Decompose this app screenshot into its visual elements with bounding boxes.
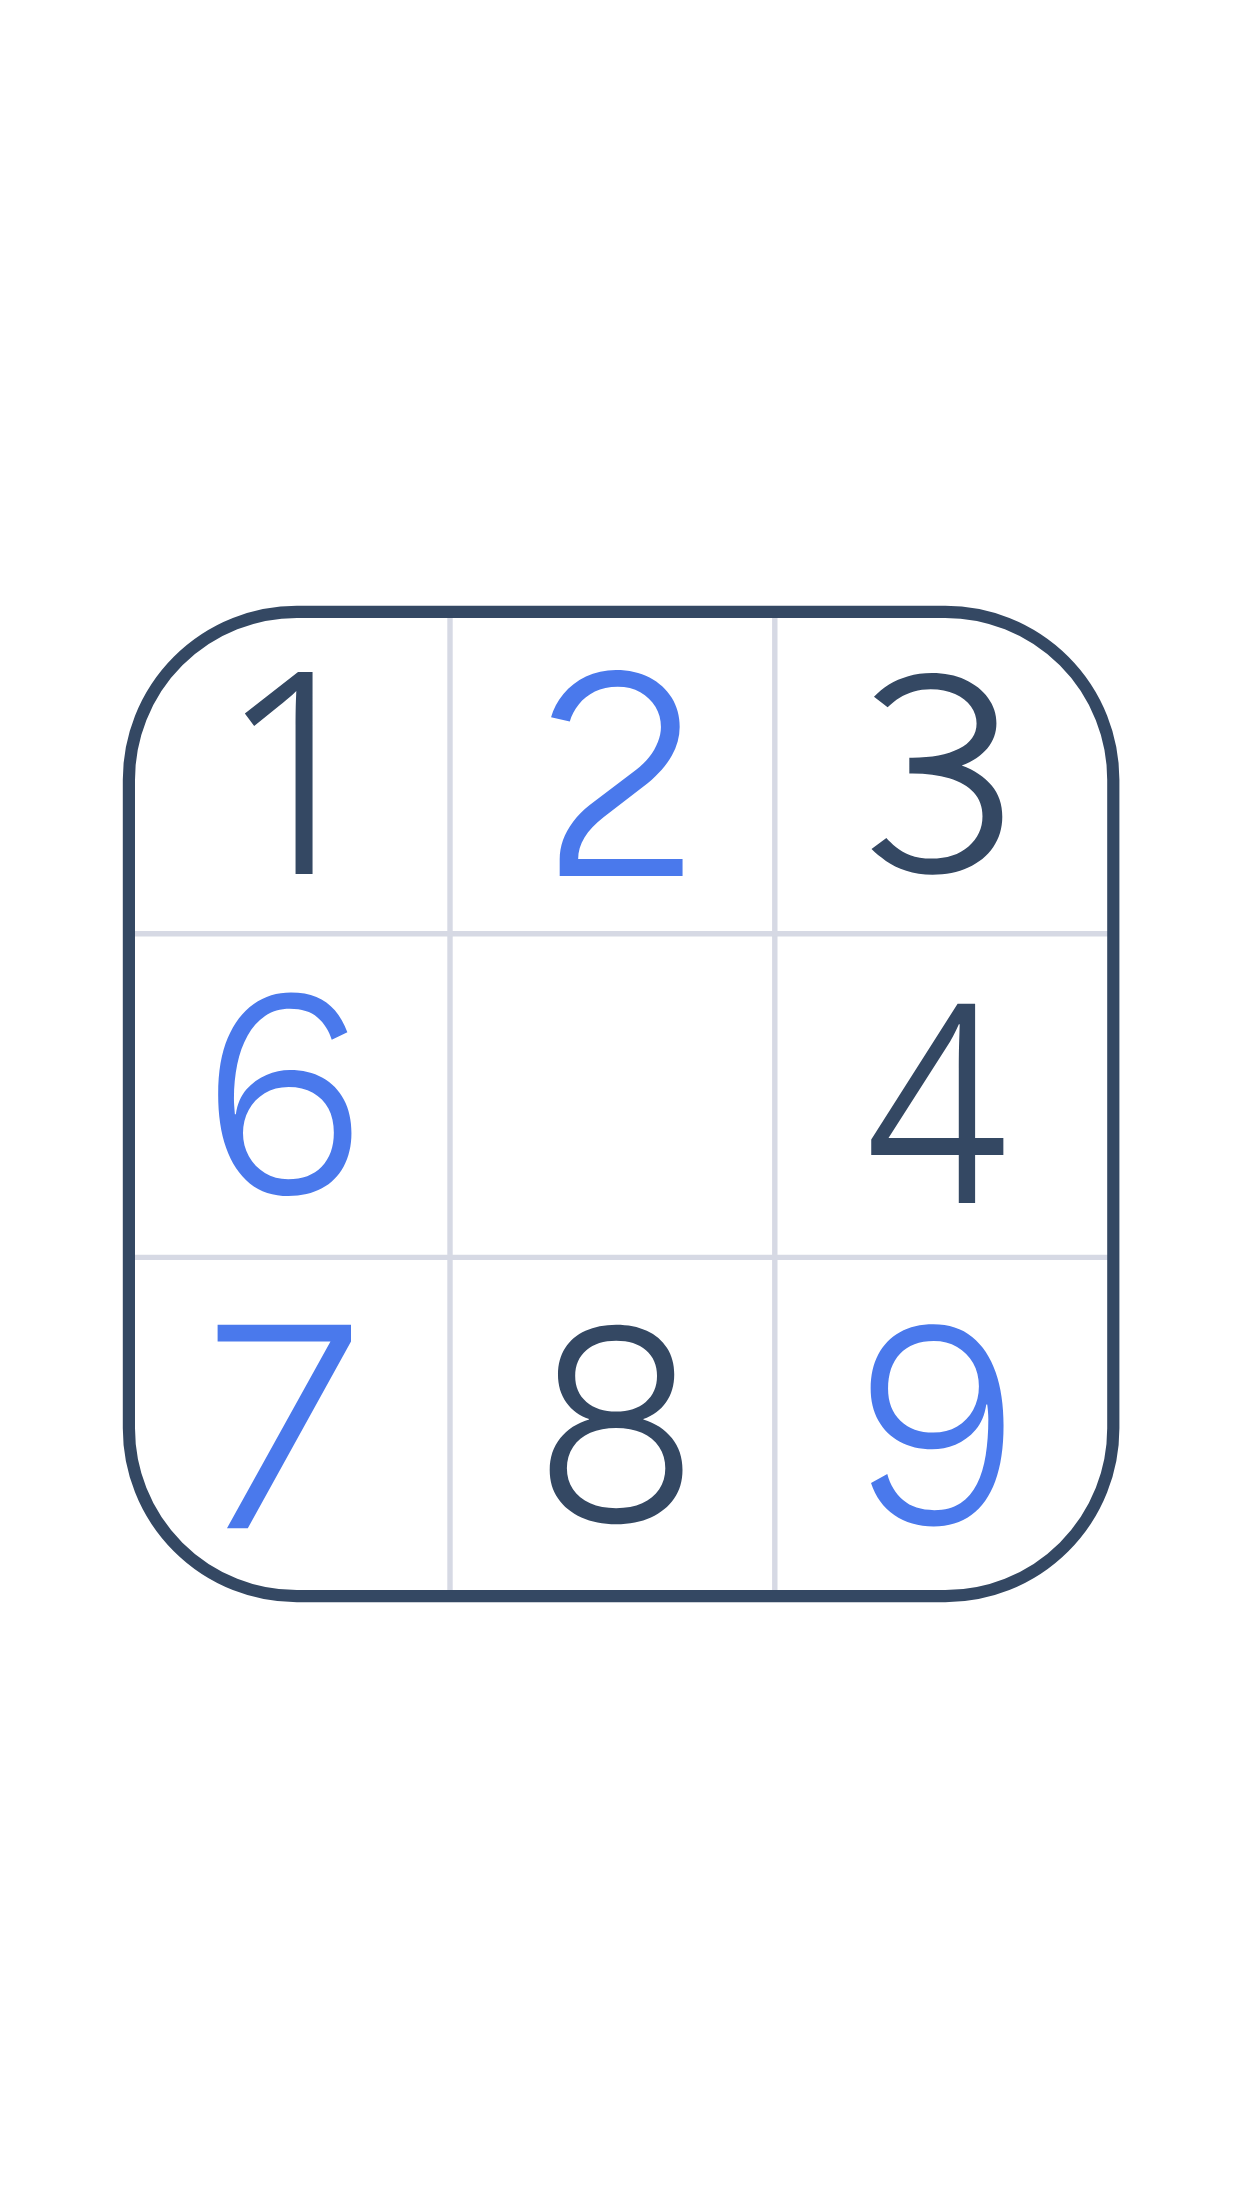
button[interactable]: Cell row 2 column 1, value 6: [129, 934, 450, 1258]
button[interactable]: Cell row 1 column 1, value 1: [129, 612, 450, 934]
button[interactable]: Cell row 1 column 2, value 2: [450, 612, 775, 934]
button[interactable]: Cell row 2 column 3, value 4: [775, 934, 1114, 1258]
button[interactable]: Cell row 1 column 3, value 3: [775, 612, 1114, 934]
button[interactable]: Cell row 3 column 2, value 8: [450, 1257, 775, 1596]
button[interactable]: Cell row 3 column 1, value 7: [129, 1257, 450, 1596]
button[interactable]: Cell row 3 column 3, value 9: [775, 1257, 1114, 1596]
button[interactable]: Empty cell row 2 column 2: [450, 934, 775, 1258]
